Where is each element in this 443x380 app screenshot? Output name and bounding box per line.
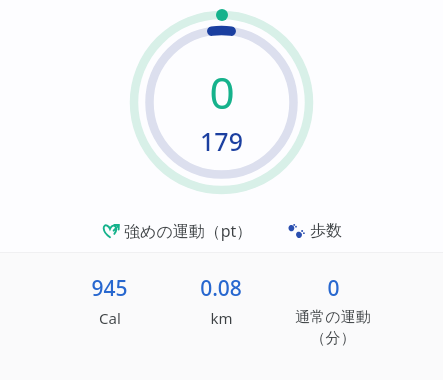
staticText: 0.08: [200, 274, 242, 303]
staticText: 179: [200, 124, 243, 158]
staticText: 通常の運動 （分）: [295, 308, 371, 347]
other: Heart points: [101, 222, 119, 240]
button[interactable]: 0.08: [165, 272, 277, 330]
other: Steps: [287, 222, 305, 240]
button[interactable]: 945: [54, 272, 165, 330]
staticText: 945: [91, 274, 128, 303]
staticText: km: [210, 308, 233, 328]
staticText: 0: [209, 62, 235, 122]
staticText: 0: [327, 274, 340, 303]
button[interactable]: Heart points: [97, 216, 257, 246]
button[interactable]: 0: [277, 272, 389, 349]
staticText: Cal: [99, 308, 121, 328]
button[interactable]: Steps: [283, 217, 346, 245]
staticText: 強めの運動（pt）: [124, 220, 253, 242]
staticText: 歩数: [310, 221, 342, 241]
